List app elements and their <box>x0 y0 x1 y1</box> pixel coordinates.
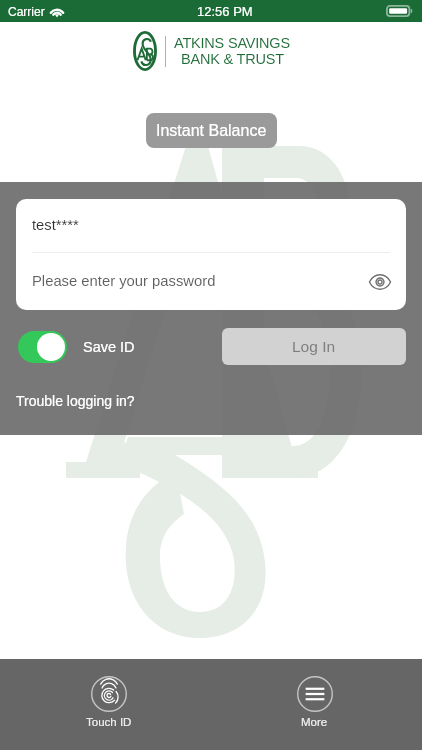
other: Show password <box>368 270 392 294</box>
staticText: ATKINS SAVINGS <box>174 35 290 51</box>
staticText: More <box>301 716 328 729</box>
staticText: Log In <box>292 338 336 355</box>
staticText: Touch ID <box>86 716 132 729</box>
staticText: Carrier <box>8 5 45 18</box>
staticText: test**** <box>32 217 79 234</box>
other: More <box>297 676 333 712</box>
button[interactable]: Save ID <box>16 331 135 363</box>
staticText: Please enter your password <box>32 273 216 290</box>
button[interactable]: test**** <box>16 199 406 252</box>
button[interactable]: Touch ID <box>71 668 146 737</box>
staticText: Instant Balance <box>156 122 267 140</box>
other: Touch ID <box>91 676 127 712</box>
button[interactable]: Trouble logging in? <box>16 393 135 409</box>
staticText: Trouble logging in? <box>16 393 135 409</box>
button[interactable]: Instant Balance <box>146 113 277 148</box>
staticText: Save ID <box>83 339 135 355</box>
staticText: BANK & TRUST <box>181 51 284 67</box>
button[interactable]: More <box>277 668 352 737</box>
button[interactable]: Please enter your password <box>16 253 406 310</box>
staticText: 12:56 PM <box>197 4 253 19</box>
button[interactable]: Log In <box>222 328 406 365</box>
